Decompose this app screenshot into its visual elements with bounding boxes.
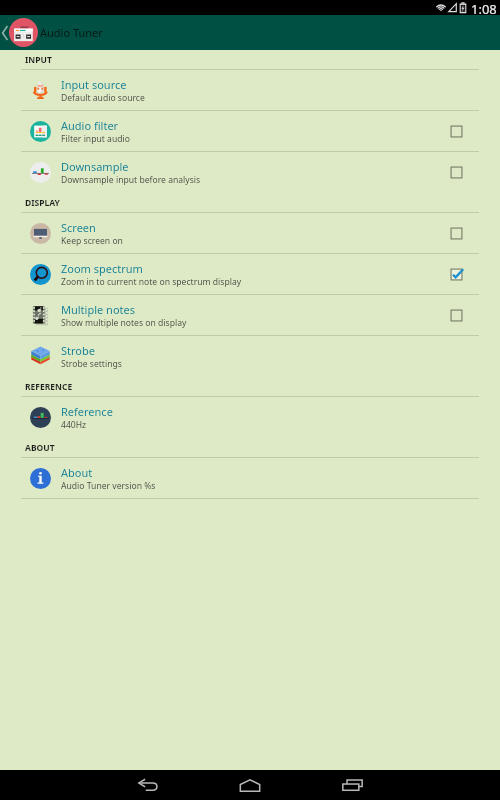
button[interactable]: Audio filter	[0, 111, 500, 151]
staticText: Audio Tuner version %s	[61, 480, 156, 492]
button[interactable]: Zoom spectrum	[434, 254, 478, 294]
staticText: Default audio source	[61, 92, 145, 104]
staticText: Strobe	[61, 343, 95, 358]
staticText: Multiple notes	[61, 302, 135, 317]
button[interactable]: Home	[199, 770, 301, 800]
staticText: 440Hz	[61, 419, 87, 431]
staticText: Reference	[61, 404, 113, 419]
staticText: Audio Tuner	[40, 25, 103, 40]
button[interactable]: Reference	[0, 397, 500, 438]
button[interactable]: Screen	[0, 213, 500, 253]
button[interactable]: Audio filter	[434, 111, 478, 151]
staticText: Downsample input before analysis	[61, 174, 201, 186]
button[interactable]: Downsample	[0, 152, 500, 193]
button[interactable]: About	[0, 458, 500, 498]
staticText: Filter input audio	[61, 133, 130, 145]
button[interactable]: Navigate up	[0, 15, 40, 50]
button[interactable]: Recent apps	[301, 770, 500, 800]
staticText: REFERENCE	[25, 381, 73, 393]
staticText: Zoom in to current note on spectrum disp…	[61, 276, 242, 288]
button[interactable]: Back	[0, 770, 199, 800]
staticText: Show multiple notes on display	[61, 317, 187, 329]
staticText: Strobe settings	[61, 358, 122, 370]
staticText: INPUT	[25, 54, 52, 66]
staticText: Keep screen on	[61, 235, 123, 247]
button[interactable]: Input source	[0, 70, 500, 110]
staticText: Downsample	[61, 159, 129, 174]
staticText: About	[61, 465, 93, 480]
button[interactable]: Zoom spectrum	[0, 254, 500, 294]
staticText: Zoom spectrum	[61, 261, 143, 276]
staticText: Screen	[61, 220, 96, 235]
staticText: Input source	[61, 77, 127, 92]
button[interactable]: Multiple notes	[0, 295, 500, 335]
staticText: DISPLAY	[25, 197, 60, 209]
staticText: ABOUT	[25, 442, 55, 454]
button[interactable]: Multiple notes	[434, 295, 478, 335]
button[interactable]: Screen	[434, 213, 478, 253]
staticText: Audio filter	[61, 118, 119, 133]
button[interactable]: Strobe	[0, 336, 500, 377]
button[interactable]: Downsample	[434, 152, 478, 193]
staticText: 1:08	[471, 0, 497, 15]
